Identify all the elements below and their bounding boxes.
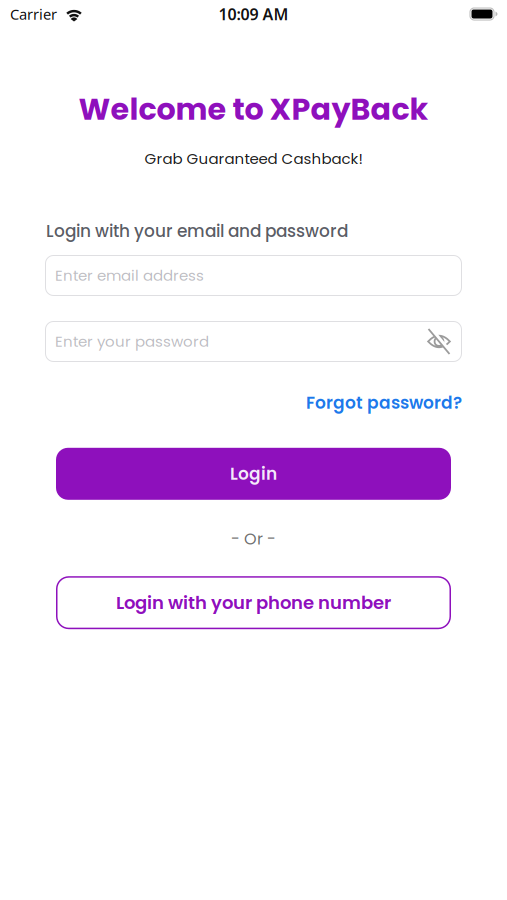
staticText: Grab Guaranteed Cashback! bbox=[144, 148, 362, 169]
staticText: Login with your phone number bbox=[116, 590, 391, 615]
staticText: Enter email address bbox=[55, 265, 204, 286]
staticText: Forgot password? bbox=[306, 391, 462, 415]
staticText: Enter your password bbox=[55, 331, 209, 352]
staticText: 10:09 AM bbox=[218, 3, 288, 25]
staticText: - Or - bbox=[231, 528, 276, 550]
staticText: Login with your email and password bbox=[46, 219, 348, 243]
staticText: Carrier bbox=[10, 4, 57, 24]
staticText: Welcome to XPayBack bbox=[78, 88, 428, 130]
button[interactable]: Login bbox=[56, 448, 451, 500]
button[interactable]: Enter email address bbox=[45, 255, 462, 296]
button[interactable]: Show password bbox=[426, 329, 452, 353]
button[interactable]: Forgot password? bbox=[306, 391, 462, 415]
button[interactable]: Login with your phone number bbox=[56, 576, 451, 629]
staticText: Login bbox=[230, 462, 277, 486]
button[interactable]: Enter your password bbox=[45, 321, 462, 362]
